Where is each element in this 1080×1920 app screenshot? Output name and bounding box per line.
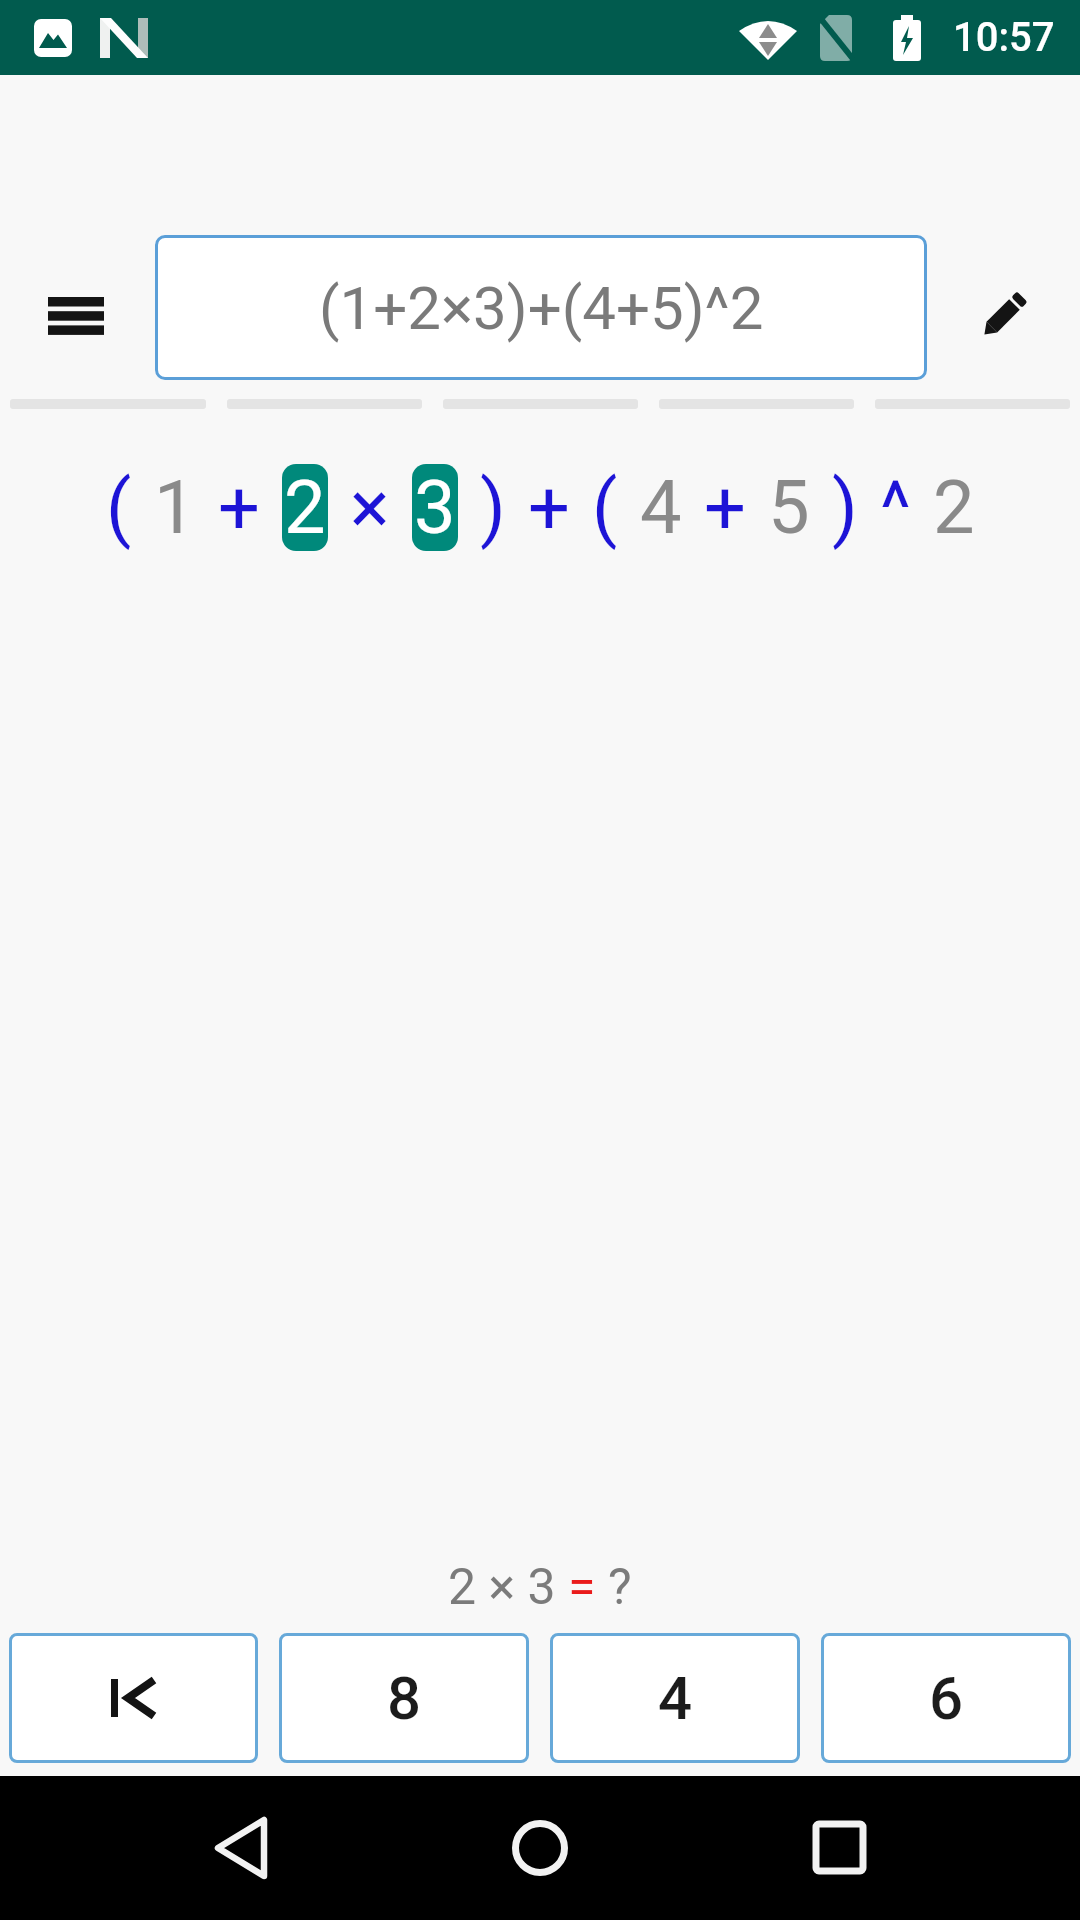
- staticText: +: [218, 464, 260, 551]
- button[interactable]: [360, 1776, 720, 1920]
- button[interactable]: 6: [821, 1633, 1071, 1763]
- staticText: 3: [414, 464, 456, 551]
- staticText: 6: [929, 1663, 964, 1733]
- button[interactable]: [0, 1776, 360, 1920]
- staticText: (1+2×3)+(4+5)^2: [319, 273, 764, 343]
- staticText: ^: [880, 464, 911, 551]
- staticText: ): [480, 464, 506, 551]
- staticText: +: [528, 464, 570, 551]
- staticText: ): [832, 464, 858, 551]
- staticText: (: [592, 464, 618, 551]
- staticText: +: [704, 464, 746, 551]
- staticText: 2: [933, 464, 975, 551]
- button[interactable]: 8: [279, 1633, 529, 1763]
- button[interactable]: (1+2×3)+(4+5)^2: [155, 235, 927, 380]
- staticText: (: [106, 464, 132, 551]
- button[interactable]: [48, 297, 104, 335]
- button[interactable]: 4: [550, 1633, 800, 1763]
- staticText: ×: [350, 464, 390, 551]
- button[interactable]: [975, 286, 1032, 343]
- staticText: 5: [768, 464, 810, 551]
- button[interactable]: 3: [414, 464, 456, 551]
- staticText: 4: [658, 1663, 693, 1733]
- staticText: 2 × 3 = ?: [448, 1558, 632, 1617]
- staticText: 8: [387, 1663, 422, 1733]
- staticText: 1: [154, 464, 196, 551]
- staticText: 10:57: [953, 14, 1055, 61]
- button[interactable]: [720, 1776, 1080, 1920]
- button[interactable]: 2: [284, 464, 326, 551]
- button[interactable]: [9, 1633, 258, 1763]
- staticText: 4: [640, 464, 682, 551]
- staticText: 2: [284, 464, 326, 551]
